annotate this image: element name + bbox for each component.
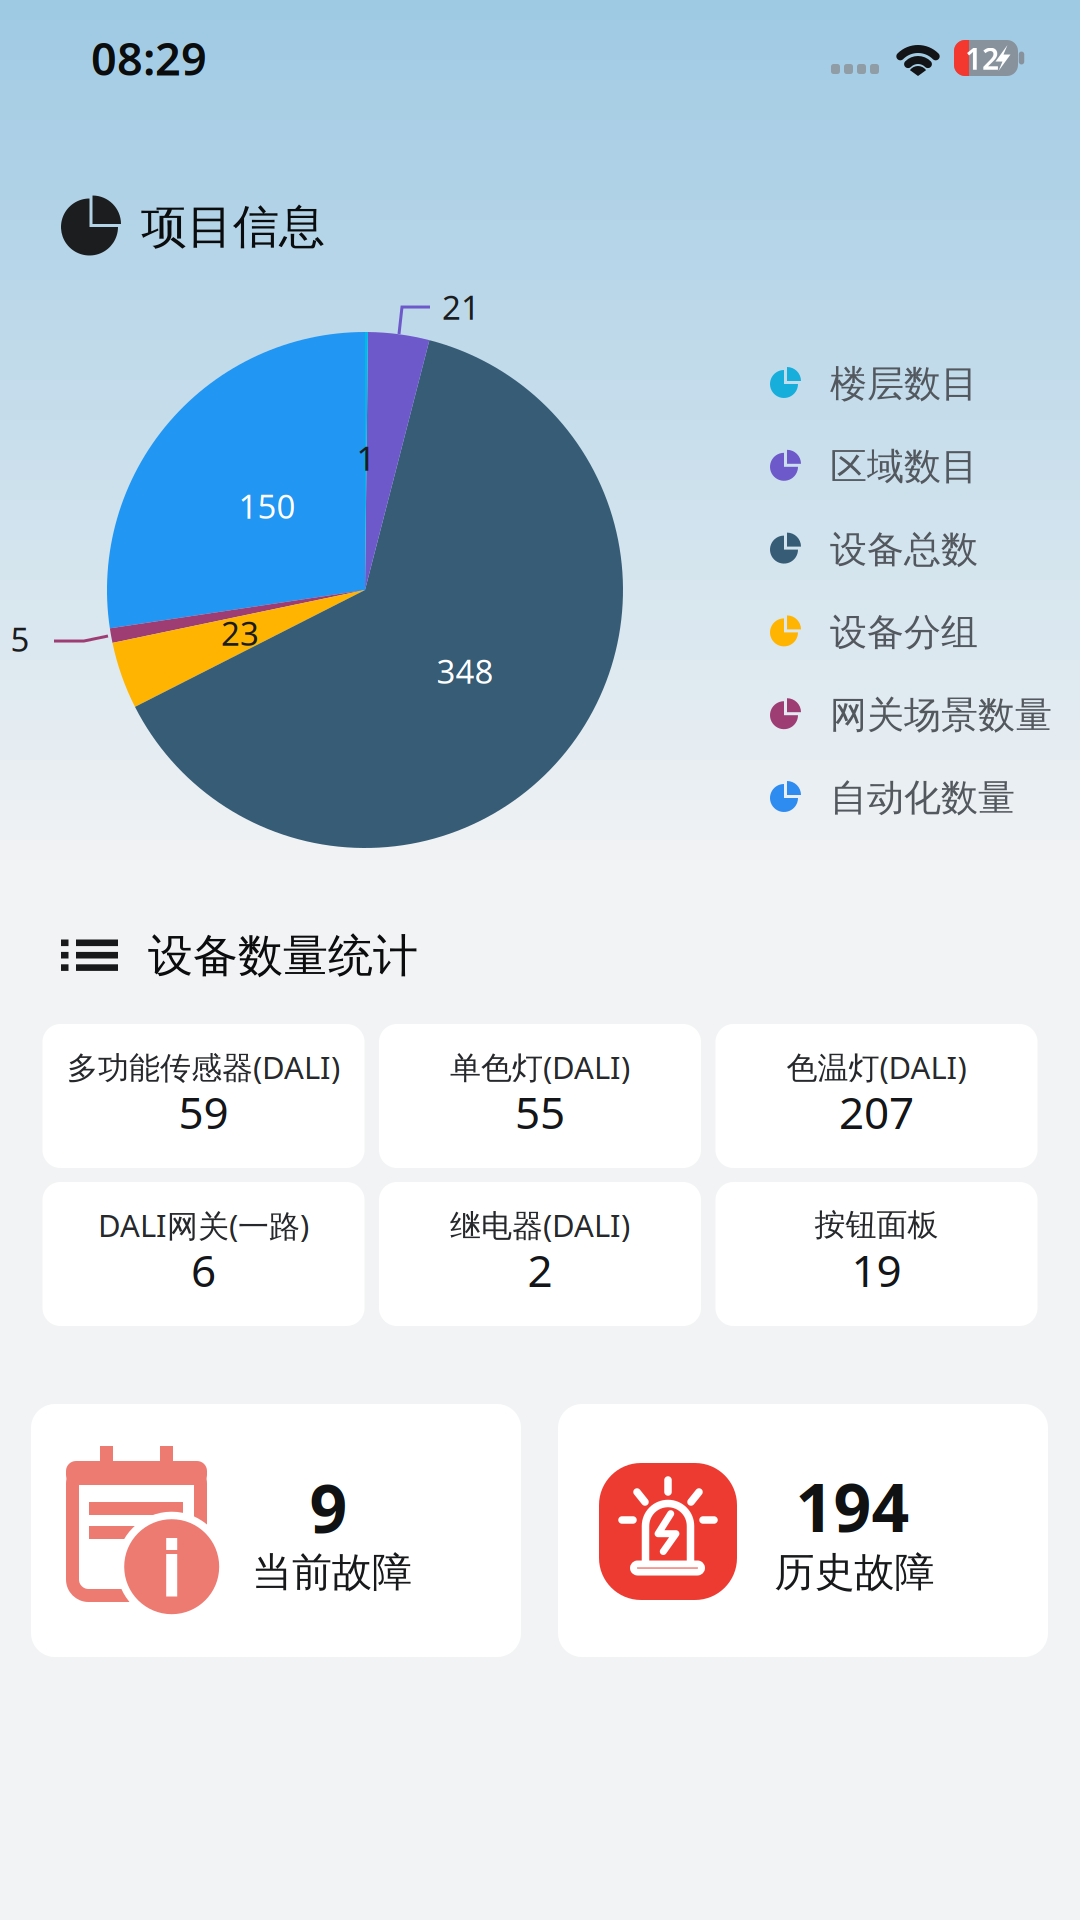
staticText: 网关场景数量 [830, 692, 1052, 738]
staticText: 19 [851, 1240, 901, 1300]
staticText: 设备分组 [830, 609, 978, 656]
staticText: 自动化数量 [830, 775, 1015, 821]
staticText: 1 [356, 435, 375, 480]
staticText: 23 [221, 610, 259, 655]
staticText: 单色灯(DALI) [450, 1046, 630, 1088]
staticText: 设备数量统计 [148, 928, 418, 984]
staticText: 12 [965, 38, 999, 78]
staticText: 区域数目 [830, 443, 978, 490]
staticText: DALI网关(一路) [98, 1204, 309, 1246]
button[interactable]: 9 [31, 1404, 521, 1657]
staticText: 楼层数目 [830, 361, 978, 407]
staticText: 21 [442, 284, 480, 329]
staticText: 继电器(DALI) [450, 1204, 630, 1246]
staticText: 2 [527, 1240, 552, 1300]
staticText: 207 [839, 1082, 914, 1142]
staticText: 5 [10, 616, 29, 661]
staticText: 6 [191, 1240, 216, 1300]
staticText: 多功能传感器(DALI) [67, 1046, 340, 1088]
staticText: 9 [309, 1463, 347, 1552]
staticText: 150 [238, 483, 295, 528]
staticText: 按钮面板 [814, 1205, 938, 1245]
staticText: 55 [515, 1082, 565, 1142]
staticText: 项目信息 [141, 198, 325, 256]
staticText: 59 [178, 1082, 228, 1142]
staticText: 08:29 [91, 27, 207, 89]
staticText: 348 [436, 648, 493, 693]
staticText: 194 [795, 1462, 909, 1551]
staticText: 历史故障 [774, 1547, 934, 1598]
staticText: 当前故障 [252, 1547, 412, 1598]
staticText: 色温灯(DALI) [786, 1046, 966, 1088]
button[interactable]: 194 [558, 1404, 1048, 1657]
staticText: 设备总数 [830, 526, 978, 573]
